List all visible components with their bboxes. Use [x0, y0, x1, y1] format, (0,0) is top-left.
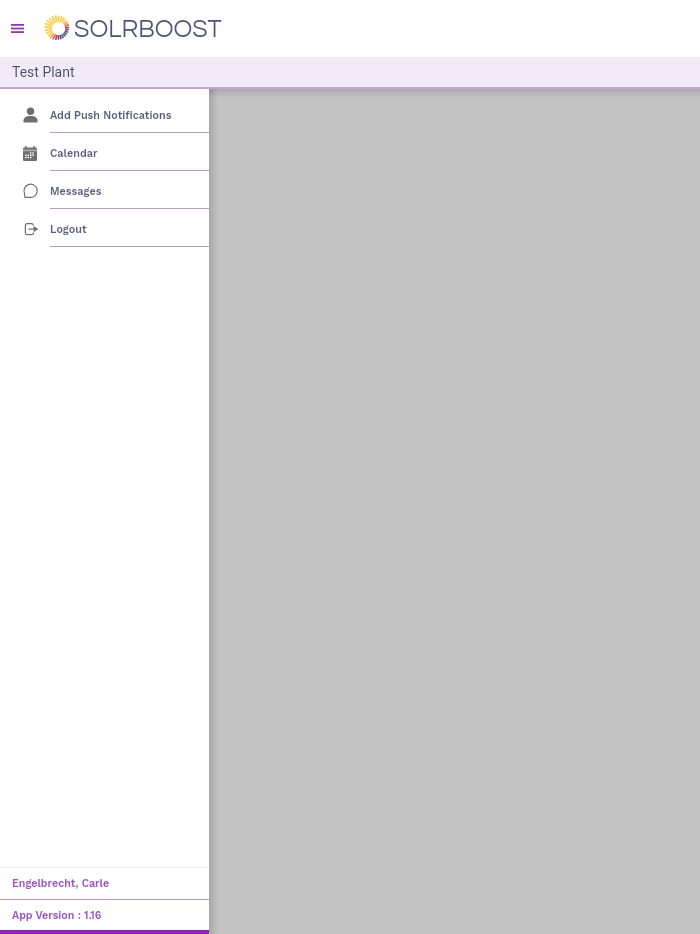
button[interactable]: Messages — [0, 171, 209, 209]
staticText: SOLRBOOST — [74, 16, 222, 42]
staticText: Calendar — [50, 147, 98, 160]
staticText: App Version : 1.16 — [12, 909, 102, 922]
staticText: Logout — [50, 223, 87, 236]
button[interactable]: Calendar — [0, 133, 209, 171]
staticText: Messages — [50, 185, 102, 198]
staticText: Test Plant — [12, 64, 75, 80]
button[interactable]: Add Push Notifications — [0, 95, 209, 133]
button[interactable]: App Version : 1.16 — [0, 900, 209, 934]
staticText: Add Push Notifications — [50, 109, 172, 122]
button[interactable]: Open navigation menu — [0, 0, 34, 57]
staticText: Engelbrecht, Carle — [12, 877, 110, 890]
button[interactable]: Engelbrecht, Carle — [0, 868, 209, 900]
button[interactable]: Logout — [0, 209, 209, 247]
